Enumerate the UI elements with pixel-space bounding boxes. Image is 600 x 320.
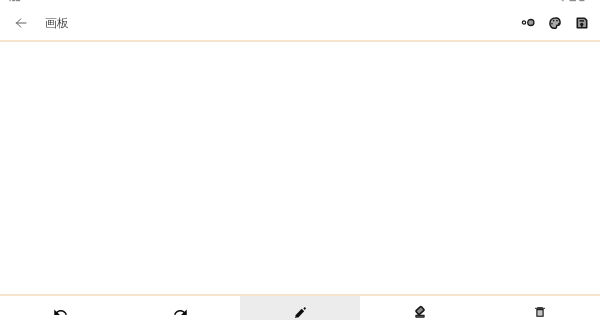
button[interactable]: Eraser [360, 295, 480, 320]
staticText: 画板 [45, 15, 69, 30]
button[interactable]: Brush size [514, 8, 542, 36]
button[interactable]: Save [568, 9, 596, 37]
button[interactable]: Color palette [541, 9, 569, 37]
button[interactable]: Back [5, 7, 36, 38]
button[interactable]: Pen [240, 295, 360, 320]
button[interactable]: Redo [120, 295, 240, 320]
button[interactable]: Clear [480, 295, 600, 320]
button[interactable]: Undo [0, 295, 120, 320]
